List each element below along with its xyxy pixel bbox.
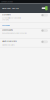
staticText: USB debugging xyxy=(2,29,13,31)
staticText: Sunday, 10 Sept xyxy=(1,1,13,3)
staticText: Developer options xyxy=(2,7,19,10)
staticText: Allow mock locations xyxy=(2,44,15,46)
staticText: Debug mode when USB is connected xyxy=(2,32,27,34)
button[interactable]: Developer options, on xyxy=(41,6,48,10)
staticText: Allow mock locations xyxy=(2,40,17,42)
staticText: Debugging xyxy=(2,24,10,26)
button[interactable]: USB debugging xyxy=(0,28,50,38)
staticText: Stay awake xyxy=(2,14,11,16)
button[interactable]: Stay awake xyxy=(0,13,50,22)
staticText: Screen will never sleep while charging xyxy=(2,17,21,21)
button[interactable]: Allow mock locations xyxy=(0,39,50,47)
